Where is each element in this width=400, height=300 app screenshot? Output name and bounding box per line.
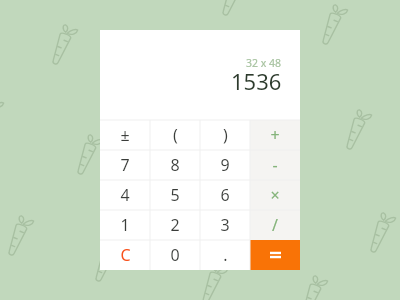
staticText: 9 [220, 154, 230, 176]
button[interactable]: Equals [250, 240, 300, 270]
staticText: 3 [220, 214, 230, 236]
staticText: ( [173, 124, 178, 146]
staticText: 7 [120, 154, 130, 176]
button[interactable]: Divide [250, 210, 300, 240]
button[interactable]: Digit 6 [200, 180, 250, 210]
staticText: ± [120, 124, 130, 146]
button[interactable]: Digit 1 [100, 210, 150, 240]
staticText: - [272, 154, 278, 176]
staticText: 0 [170, 244, 180, 266]
staticText: 6 [220, 184, 230, 206]
button[interactable]: Clear [100, 240, 150, 270]
staticText: 8 [170, 154, 180, 176]
staticText: + [270, 124, 280, 146]
staticText: 1 [120, 214, 130, 236]
staticText: 2 [170, 214, 180, 236]
button[interactable]: Digit 2 [150, 210, 200, 240]
button[interactable]: Digit 0 [150, 240, 200, 270]
staticText: 32 x 48 [246, 56, 282, 70]
button[interactable]: Digit 4 [100, 180, 150, 210]
button[interactable]: Close parenthesis [200, 120, 250, 150]
staticText: / [272, 214, 278, 236]
staticText: 4 [120, 184, 130, 206]
staticText: ) [223, 124, 228, 146]
button[interactable]: Digit 7 [100, 150, 150, 180]
button[interactable]: Plus [250, 120, 300, 150]
button[interactable]: Digit 5 [150, 180, 200, 210]
button[interactable]: Digit 8 [150, 150, 200, 180]
staticText: . [223, 244, 228, 266]
staticText: 5 [170, 184, 180, 206]
button[interactable]: Decimal point [200, 240, 250, 270]
staticText: 1536 [231, 66, 282, 96]
staticText: C [120, 244, 131, 266]
button[interactable]: Open parenthesis [150, 120, 200, 150]
button[interactable]: Minus [250, 150, 300, 180]
button[interactable]: Digit 3 [200, 210, 250, 240]
button[interactable]: Digit 9 [200, 150, 250, 180]
button[interactable]: Toggle sign [100, 120, 150, 150]
button[interactable]: Multiply [250, 180, 300, 210]
staticText: × [270, 184, 280, 206]
